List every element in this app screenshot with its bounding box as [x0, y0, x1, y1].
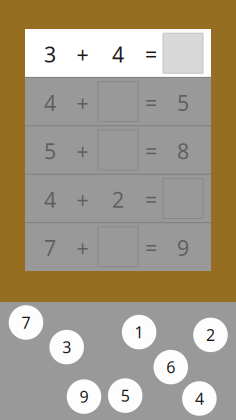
staticText: 5 [121, 385, 130, 406]
button[interactable]: 2 [193, 318, 228, 352]
staticText: 1 [135, 321, 144, 343]
staticText: + [76, 88, 88, 117]
staticText: 9 [177, 234, 189, 262]
staticText: + [76, 137, 88, 165]
staticText: 6 [166, 356, 175, 378]
staticText: 7 [44, 234, 56, 262]
staticText: 3 [44, 40, 56, 68]
button[interactable]: 1 [122, 315, 156, 349]
staticText: 5 [44, 137, 56, 165]
button[interactable]: 9 [67, 379, 101, 414]
staticText: 8 [177, 137, 189, 165]
staticText: = [145, 234, 157, 262]
staticText: = [145, 137, 157, 165]
button[interactable]: 3 [49, 330, 84, 364]
staticText: + [76, 40, 88, 68]
staticText: 2 [206, 324, 215, 345]
staticText: = [145, 88, 157, 117]
button[interactable]: Empty answer slot [163, 33, 203, 73]
staticText: 3 [62, 336, 71, 358]
staticText: 4 [195, 388, 204, 409]
staticText: 4 [112, 40, 124, 68]
button[interactable]: 5 [108, 378, 142, 413]
staticText: 7 [21, 312, 30, 333]
staticText: 4 [44, 185, 56, 213]
staticText: + [76, 234, 88, 262]
button[interactable]: 4 [182, 381, 217, 416]
staticText: 5 [177, 88, 189, 117]
staticText: 2 [112, 185, 124, 213]
staticText: 4 [44, 88, 56, 117]
button[interactable]: 6 [154, 350, 188, 384]
staticText: = [145, 40, 157, 68]
staticText: = [145, 185, 157, 213]
button[interactable]: 7 [9, 305, 43, 340]
staticText: 9 [79, 386, 88, 407]
staticText: + [76, 185, 88, 213]
